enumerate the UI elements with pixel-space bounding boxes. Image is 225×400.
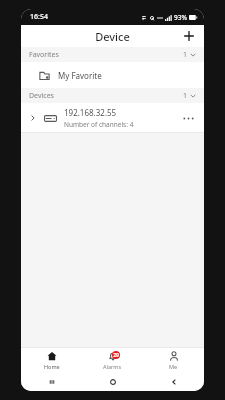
staticText: Alarms [103,363,122,370]
button[interactable]: More options [180,110,196,126]
button[interactable]: Expand [27,112,39,124]
staticText: 1 [183,91,188,101]
staticText: 29 [113,352,119,359]
staticText: Favorites [29,50,59,60]
staticText: Devices [29,91,54,101]
staticText: Device [95,29,130,44]
button[interactable]: Expand [21,103,204,133]
button[interactable]: Me [143,347,204,373]
button[interactable]: Devices [21,88,204,103]
staticText: My Favorite [58,70,102,81]
staticText: 16:54 [30,12,48,22]
staticText: Number of channels: 4 [64,120,134,129]
button[interactable]: Recents [21,373,82,391]
staticText: 1 [183,50,188,60]
button[interactable]: Favorites [21,47,204,62]
staticText: 93% [174,13,187,22]
staticText: 192.168.32.55 [64,107,117,118]
button[interactable]: Home [82,373,143,391]
button[interactable]: My Favorite [21,62,204,88]
staticText: Me [169,363,178,370]
staticText: Home [44,363,60,370]
button[interactable]: Back [143,373,204,391]
button[interactable]: 29 [82,347,143,373]
button[interactable]: Home [21,347,82,373]
button[interactable]: Add device [180,27,198,45]
